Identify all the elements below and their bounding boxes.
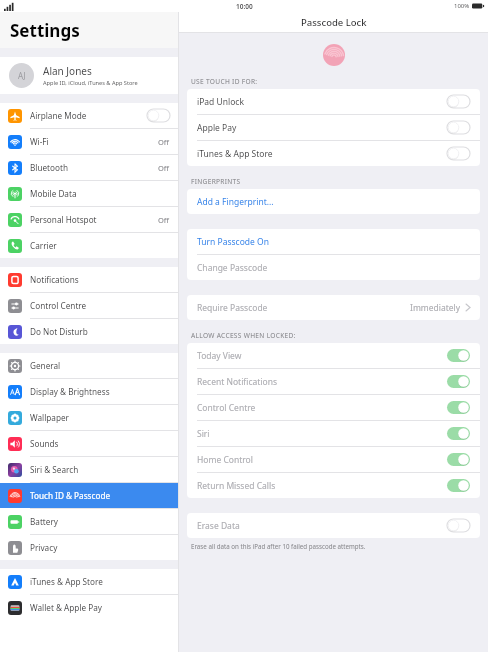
staticText: Add a Fingerprint... [197, 196, 274, 208]
button[interactable]: Switch off [447, 121, 470, 134]
staticText: AJ [18, 70, 26, 81]
staticText: Immediately [410, 302, 461, 314]
staticText: Change Passcode [197, 262, 268, 274]
staticText: USE TOUCH ID FOR: [191, 77, 258, 86]
button[interactable]: General [0, 353, 178, 378]
staticText: Passcode Lock [301, 16, 367, 29]
staticText: Siri & Search [30, 464, 79, 475]
staticText: Require Passcode [197, 302, 268, 314]
staticText: Control Centre [197, 402, 256, 414]
button[interactable]: Do Not Disturb [0, 319, 178, 344]
staticText: Erase Data [197, 520, 240, 532]
staticText: FINGERPRINTS [191, 177, 241, 186]
button[interactable]: Apple Pay [187, 115, 480, 140]
button[interactable]: Switch on [447, 401, 470, 414]
button[interactable]: Mobile Data [0, 181, 178, 206]
button[interactable]: Home Control [187, 447, 480, 472]
staticText: Off [158, 163, 170, 173]
staticText: Carrier [30, 240, 57, 251]
button[interactable]: Siri [187, 421, 480, 446]
staticText: General [30, 360, 61, 371]
button[interactable]: Control Centre [0, 293, 178, 318]
staticText: Mobile Data [30, 188, 77, 199]
button[interactable]: Turn Passcode On [187, 229, 480, 254]
button[interactable]: Siri & Search [0, 457, 178, 482]
staticText: Apple Pay [197, 122, 237, 134]
button[interactable]: Personal Hotspot [0, 207, 178, 232]
staticText: Wi-Fi [30, 136, 49, 147]
button[interactable]: Switch on [447, 349, 470, 362]
staticText: Display & Brightness [30, 386, 110, 397]
button[interactable]: Today View [187, 343, 480, 368]
button[interactable]: Bluetooth [0, 155, 178, 180]
staticText: 100% [454, 2, 470, 10]
staticText: iTunes & App Store [30, 576, 103, 587]
staticText: ALLOW ACCESS WHEN LOCKED: [191, 331, 296, 340]
staticText: Wallet & Apple Pay [30, 602, 102, 613]
button[interactable]: Sounds [0, 431, 178, 456]
staticText: Recent Notifications [197, 376, 278, 388]
staticText: Notifications [30, 274, 79, 285]
staticText: Return Missed Calls [197, 480, 276, 492]
button[interactable]: Switch off [147, 109, 170, 122]
button[interactable]: Switch on [447, 453, 470, 466]
staticText: Battery [30, 516, 59, 527]
button[interactable]: AJ [0, 57, 178, 94]
button[interactable]: Switch off [447, 147, 470, 160]
button[interactable]: Switch on [447, 375, 470, 388]
staticText: Wallpaper [30, 412, 69, 423]
staticText: Do Not Disturb [30, 326, 88, 337]
button[interactable]: Return Missed Calls [187, 473, 480, 498]
button[interactable]: iTunes & App Store [187, 141, 480, 166]
button[interactable]: Add a Fingerprint... [187, 189, 480, 214]
button[interactable]: Wallet & Apple Pay [0, 595, 178, 620]
staticText: Privacy [30, 542, 58, 553]
button[interactable]: Touch ID & Passcode [0, 483, 178, 508]
button[interactable]: Erase Data [187, 513, 480, 538]
button[interactable]: Change Passcode [187, 255, 480, 280]
button[interactable]: Display & Brightness [0, 379, 178, 404]
staticText: iPad Unlock [197, 96, 244, 108]
staticText: Airplane Mode [30, 110, 87, 121]
staticText: Off [158, 137, 170, 147]
staticText: Today View [197, 350, 242, 362]
button[interactable]: Control Centre [187, 395, 480, 420]
staticText: Home Control [197, 454, 253, 466]
button[interactable]: Switch on [447, 479, 470, 492]
button[interactable]: Switch on [447, 427, 470, 440]
button[interactable]: Carrier [0, 233, 178, 258]
staticText: Apple ID, iCloud, iTunes & App Store [43, 79, 138, 87]
staticText: Personal Hotspot [30, 214, 97, 225]
staticText: Off [158, 215, 170, 225]
staticText: Bluetooth [30, 162, 68, 173]
button[interactable]: Airplane Mode [0, 103, 178, 128]
button[interactable]: Battery [0, 509, 178, 534]
button[interactable]: iPad Unlock [187, 89, 480, 114]
button[interactable]: Privacy [0, 535, 178, 560]
staticText: Settings [10, 19, 80, 42]
staticText: Turn Passcode On [197, 236, 269, 248]
button[interactable]: Recent Notifications [187, 369, 480, 394]
staticText: Siri [197, 428, 210, 440]
button[interactable]: Switch off [447, 519, 470, 532]
staticText: iTunes & App Store [197, 148, 273, 160]
staticText: Alan Jones [43, 64, 92, 78]
button[interactable]: Notifications [0, 267, 178, 292]
button[interactable]: Wi-Fi [0, 129, 178, 154]
button[interactable]: Require Passcode [187, 295, 480, 320]
staticText: Touch ID & Passcode [30, 490, 111, 501]
button[interactable]: Switch off [447, 95, 470, 108]
staticText: 10:00 [236, 2, 253, 11]
staticText: Control Centre [30, 300, 87, 311]
staticText: Sounds [30, 438, 59, 449]
staticText: Erase all data on this iPad after 10 fai… [191, 542, 366, 550]
button[interactable]: Wallpaper [0, 405, 178, 430]
button[interactable]: iTunes & App Store [0, 569, 178, 594]
